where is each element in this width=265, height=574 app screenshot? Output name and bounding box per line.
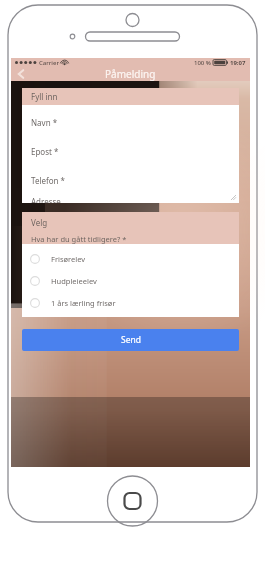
staticText: Påmelding [105,67,156,81]
staticText: Telefon * [31,175,65,186]
staticText: Send [121,334,141,346]
staticText: 19:07 [230,59,246,67]
staticText: Hudpleieelev [51,276,97,286]
button[interactable]: Send [22,329,239,351]
staticText: Adresse [31,196,61,203]
button[interactable]: Navn * [31,116,239,128]
staticText: 100 % [194,59,211,67]
staticText: Frisørelev [51,254,86,264]
staticText: 1 års lærling frisør [51,298,116,308]
button[interactable]: Back [11,67,31,81]
button[interactable]: 1 års lærling frisør [22,295,239,310]
button[interactable]: Adresse [31,196,239,203]
button[interactable]: Frisørelev [22,251,239,266]
staticText: Hva har du gått tidligere? * [31,234,127,244]
button[interactable]: Telefon * [31,174,239,186]
staticText: Epost * [31,146,59,157]
staticText: Velg [31,217,48,228]
staticText: Carrier [39,59,59,67]
staticText: Fyll inn [31,91,58,102]
button[interactable]: Epost * [31,145,239,157]
staticText: Navn * [31,117,58,128]
button[interactable]: Hudpleieelev [22,273,239,288]
